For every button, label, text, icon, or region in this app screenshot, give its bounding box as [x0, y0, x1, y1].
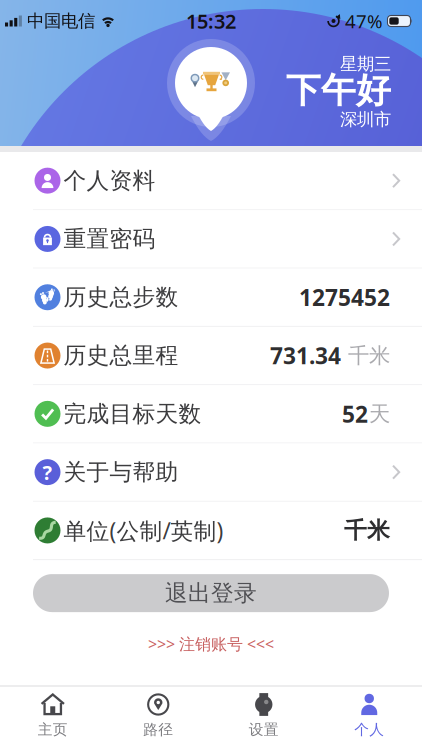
staticText: 单位(公制/英制): [63, 515, 223, 545]
button[interactable]: 设置: [211, 687, 316, 743]
staticText: 731.34: [270, 340, 341, 371]
button[interactable]: 路径: [105, 687, 211, 743]
staticText: >>> 注销账号 <<<: [148, 633, 274, 654]
staticText: 天: [369, 401, 390, 427]
staticText: 个人资料: [63, 167, 155, 194]
staticText: 个人: [354, 720, 384, 738]
button[interactable]: 历史总里程: [0, 327, 422, 385]
staticText: 关于与帮助: [63, 458, 178, 486]
staticText: 主页: [38, 720, 68, 738]
button[interactable]: 主页: [0, 687, 105, 743]
staticText: 星期三: [340, 53, 391, 75]
staticText: 设置: [249, 720, 279, 738]
staticText: 深圳市: [340, 109, 391, 130]
staticText: 历史总里程: [63, 342, 178, 369]
staticText: 47%: [345, 9, 383, 33]
staticText: 千米: [344, 516, 390, 544]
staticText: 历史总步数: [63, 283, 178, 311]
button[interactable]: 历史总步数: [0, 269, 422, 327]
button[interactable]: 完成目标天数: [0, 385, 422, 443]
staticText: 退出登录: [165, 579, 257, 607]
staticText: 下午好: [286, 69, 391, 112]
staticText: 完成目标天数: [63, 400, 201, 428]
staticText: 重置密码: [63, 225, 155, 253]
staticText: 52: [342, 399, 368, 429]
button[interactable]: 个人资料: [0, 152, 422, 210]
staticText: 1275452: [299, 282, 390, 312]
staticText: ?: [42, 459, 52, 485]
button[interactable]: >>> 注销账号 <<<: [148, 633, 274, 654]
staticText: 中国电信: [27, 10, 95, 32]
staticText: 15:32: [186, 8, 236, 34]
button[interactable]: 单位(公制/英制): [0, 502, 422, 560]
staticText: 千米: [348, 342, 390, 369]
button[interactable]: 退出登录: [33, 574, 389, 612]
button[interactable]: 个人: [316, 687, 422, 743]
button[interactable]: 重置密码: [0, 210, 422, 269]
button[interactable]: ?: [0, 443, 422, 502]
staticText: 路径: [143, 720, 173, 738]
